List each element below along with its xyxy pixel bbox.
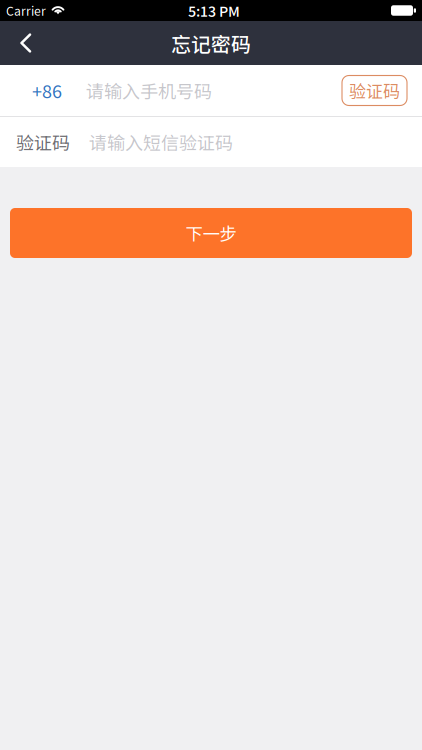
button[interactable]: +86 [0,65,342,116]
staticText: 请输入短信验证码 [89,129,233,155]
staticText: 验证码 [349,78,400,103]
staticText: 请输入手机号码 [86,77,212,104]
button[interactable]: 验证码 [342,75,407,105]
staticText: 忘记密码 [171,29,251,57]
staticText: Carrier [6,2,46,19]
staticText: 验证码 [16,129,70,155]
button[interactable]: Back [0,21,49,65]
staticText: 5:13 PM [188,0,240,21]
button[interactable]: 验证码 [0,117,422,167]
staticText: 下一步 [185,220,236,246]
staticText: +86 [32,77,62,104]
button[interactable]: 下一步 [10,208,412,258]
